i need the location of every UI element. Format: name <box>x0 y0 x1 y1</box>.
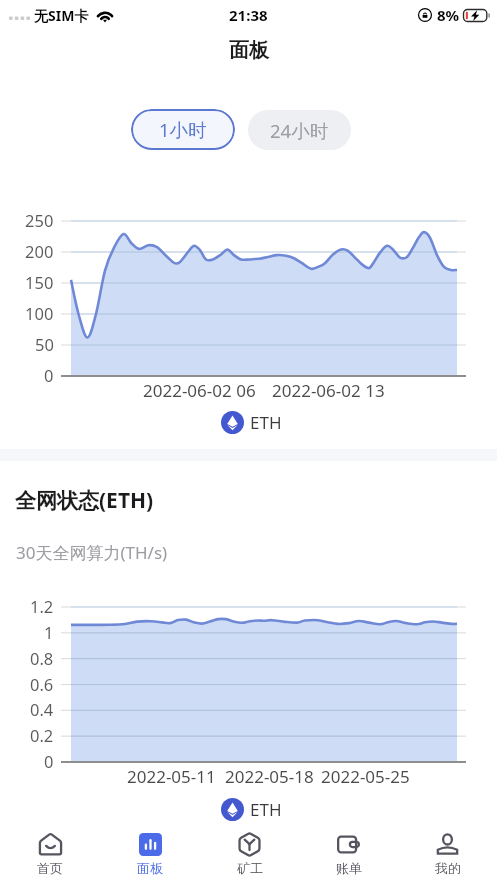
button[interactable]: 24小时 <box>248 110 351 150</box>
staticText: 无SIM卡 <box>34 6 89 25</box>
staticText: 200 <box>25 240 54 262</box>
staticText: 1 <box>44 621 54 643</box>
staticText: 2022-05-11 <box>127 765 216 788</box>
staticText: 面板 <box>229 38 269 63</box>
staticText: 0.4 <box>30 698 54 720</box>
staticText: 2022-06-02 13 <box>272 379 385 402</box>
button[interactable]: 面板 <box>100 826 200 883</box>
staticText: 我的 <box>435 860 461 876</box>
staticText: 2022-05-25 <box>321 765 410 788</box>
staticText: 24小时 <box>270 118 329 143</box>
button[interactable]: 我的 <box>398 826 497 883</box>
staticText: 2022-06-02 06 <box>143 379 256 402</box>
staticText: 150 <box>25 271 54 293</box>
button[interactable]: 账单 <box>299 826 398 883</box>
staticText: 8% <box>437 5 460 25</box>
staticText: 2022-05-18 <box>225 765 314 788</box>
button[interactable]: 首页 <box>0 826 100 883</box>
staticText: 0 <box>44 750 54 772</box>
button[interactable]: 矿工 <box>200 826 299 883</box>
button[interactable]: 1小时 <box>131 109 235 150</box>
staticText: 0.2 <box>30 724 54 746</box>
staticText: ETH <box>250 798 282 821</box>
staticText: 21:38 <box>229 5 268 25</box>
staticText: 全网状态(ETH) <box>15 486 154 515</box>
staticText: 面板 <box>137 860 163 876</box>
staticText: 0.8 <box>30 647 54 669</box>
staticText: 0.6 <box>30 673 54 695</box>
staticText: 1小时 <box>159 117 207 142</box>
staticText: 1.2 <box>30 595 54 617</box>
staticText: 矿工 <box>237 860 263 876</box>
staticText: 首页 <box>37 860 63 876</box>
staticText: 100 <box>25 302 54 324</box>
staticText: 250 <box>25 209 54 231</box>
staticText: 30天全网算力(TH/s) <box>16 541 168 564</box>
staticText: 50 <box>35 333 54 355</box>
staticText: 0 <box>44 364 54 386</box>
staticText: ETH <box>250 411 282 434</box>
staticText: 账单 <box>336 860 362 876</box>
